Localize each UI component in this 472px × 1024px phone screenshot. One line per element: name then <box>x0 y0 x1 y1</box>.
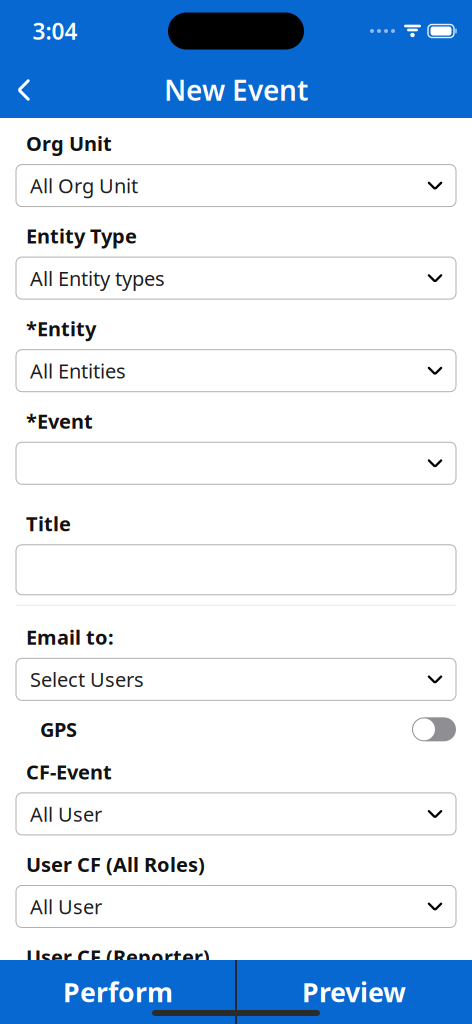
staticText: All Entities <box>30 357 126 384</box>
staticText: Email to: <box>26 624 114 650</box>
button[interactable]: All User <box>16 793 456 835</box>
staticText: User CF (All Roles) <box>26 851 205 877</box>
button[interactable]: GPS <box>16 712 456 746</box>
staticText: User CF (Reporter) <box>26 943 210 970</box>
staticText: Select Users <box>30 666 144 693</box>
staticText: CF-Event <box>26 758 112 785</box>
button[interactable]: All Entities <box>16 350 456 392</box>
staticText: Title <box>26 510 71 537</box>
button[interactable]: Back <box>0 67 48 113</box>
button[interactable]: Select Users <box>16 658 456 700</box>
staticText: *Entity <box>26 315 96 342</box>
staticText: New Event <box>164 71 308 109</box>
staticText: All User <box>30 986 102 1012</box>
staticText: All User <box>30 801 102 827</box>
button[interactable]: All Org Unit <box>16 165 456 207</box>
button[interactable]: All User <box>16 885 456 927</box>
button[interactable]: Preview <box>236 960 472 1024</box>
staticText: 3:04 <box>32 16 77 46</box>
button[interactable] <box>16 545 456 595</box>
staticText: All User <box>30 893 102 920</box>
button[interactable]: Perform <box>0 960 236 1024</box>
staticText: *Event <box>26 408 93 434</box>
button[interactable]: All User <box>16 978 456 1020</box>
staticText: All Org Unit <box>30 172 138 199</box>
staticText: All Entity types <box>30 265 165 291</box>
staticText: Entity Type <box>26 223 137 249</box>
staticText: Preview <box>302 974 406 1010</box>
button[interactable]: All Entity types <box>16 257 456 299</box>
staticText: Org Unit <box>26 130 112 157</box>
staticText: GPS <box>40 716 77 743</box>
staticText: Perform <box>63 974 173 1010</box>
button[interactable] <box>16 442 456 484</box>
